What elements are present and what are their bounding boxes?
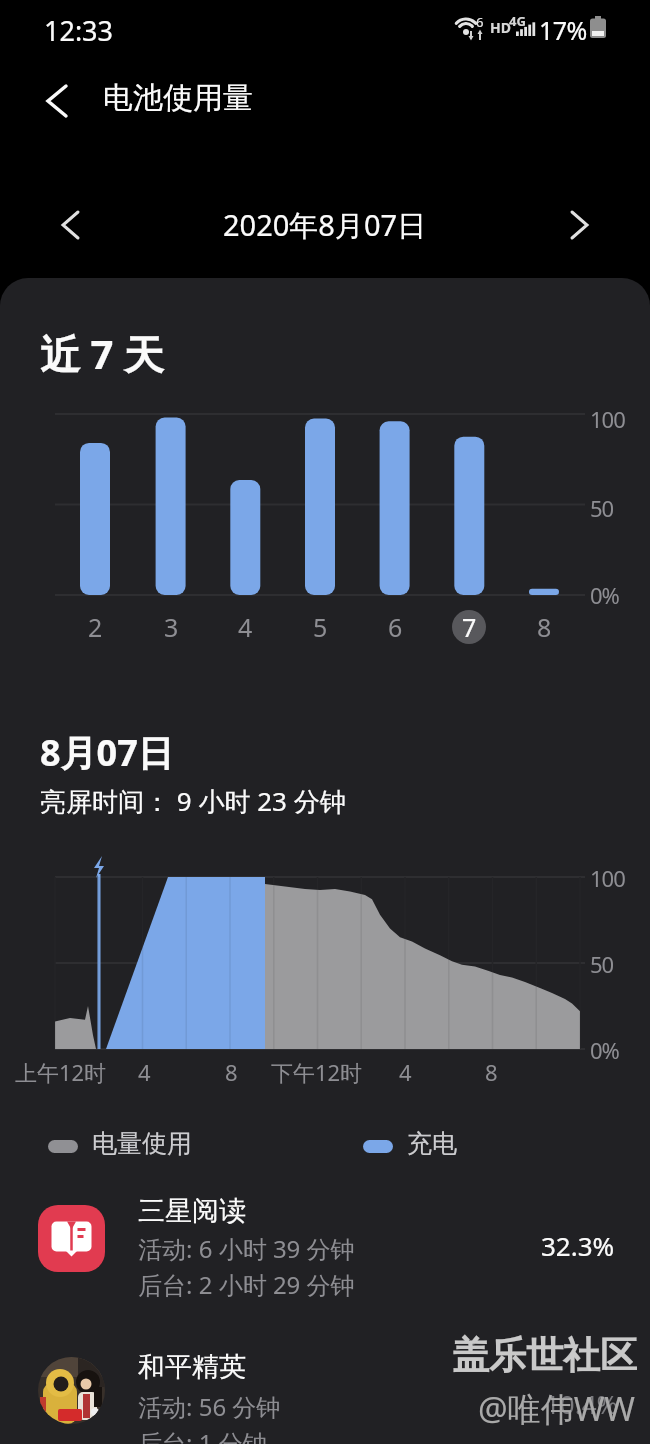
staticText: 电量使用 bbox=[92, 1128, 192, 1159]
staticText: 活动: 6 小时 39 分钟 bbox=[138, 1232, 355, 1265]
staticText: 50 bbox=[590, 493, 614, 523]
staticText: 4 bbox=[399, 1057, 412, 1087]
staticText: 下午12时 bbox=[271, 1057, 363, 1087]
button[interactable] bbox=[556, 202, 602, 248]
staticText: 8 bbox=[225, 1057, 238, 1087]
staticText: 活动: 56 分钟 bbox=[138, 1390, 281, 1423]
staticText: 100 bbox=[590, 863, 625, 893]
staticText: 亮屏时间： 9 小时 23 分钟 bbox=[40, 783, 346, 819]
staticText: 0% bbox=[590, 580, 619, 610]
staticText: 17% bbox=[539, 13, 587, 47]
staticText: 10.4% bbox=[545, 1386, 619, 1421]
staticText: 5 bbox=[313, 610, 328, 644]
staticText: 盖乐世社区 bbox=[452, 1332, 637, 1379]
staticText: 2 bbox=[88, 610, 103, 644]
staticText: 3 bbox=[164, 610, 179, 644]
staticText: 充电 bbox=[407, 1128, 457, 1159]
button[interactable] bbox=[48, 202, 94, 248]
staticText: 后台: 1 分钟 bbox=[138, 1426, 267, 1444]
staticText: 100 bbox=[590, 404, 625, 434]
staticText: 8月07日 bbox=[40, 728, 174, 777]
button[interactable]: 和平精英 bbox=[0, 1350, 650, 1444]
staticText: 电池使用量 bbox=[103, 79, 253, 117]
staticText: 上午12时 bbox=[15, 1057, 107, 1087]
staticText: 6 bbox=[476, 13, 484, 31]
button[interactable]: 三星阅读 bbox=[0, 1194, 650, 1304]
staticText: 7 bbox=[462, 610, 477, 644]
staticText: 和平精英 bbox=[138, 1350, 246, 1384]
staticText: 50 bbox=[590, 949, 614, 979]
button[interactable]: 8 bbox=[527, 610, 561, 644]
button[interactable] bbox=[36, 78, 80, 122]
button[interactable]: 6 bbox=[378, 610, 412, 644]
button[interactable]: 4 bbox=[228, 610, 262, 644]
button[interactable]: 3 bbox=[154, 610, 188, 644]
staticText: 4 bbox=[138, 1057, 151, 1087]
staticText: 8 bbox=[485, 1057, 498, 1087]
staticText: 0% bbox=[590, 1035, 619, 1065]
staticText: 4G bbox=[509, 12, 526, 30]
staticText: HD bbox=[490, 18, 511, 37]
staticText: 6 bbox=[388, 610, 403, 644]
button[interactable]: 2 bbox=[78, 610, 112, 644]
button[interactable]: 7 bbox=[452, 610, 486, 644]
staticText: 近 7 天 bbox=[40, 326, 164, 381]
staticText: 三星阅读 bbox=[138, 1194, 246, 1228]
staticText: 后台: 2 小时 29 分钟 bbox=[138, 1268, 355, 1301]
staticText: @唯伟WW bbox=[478, 1386, 636, 1431]
staticText: 8 bbox=[537, 610, 552, 644]
staticText: 2020年8月07日 bbox=[223, 205, 427, 245]
staticText: 32.3% bbox=[541, 1228, 615, 1263]
button[interactable]: 5 bbox=[303, 610, 337, 644]
staticText: 4 bbox=[238, 610, 253, 644]
staticText: 12:33 bbox=[44, 12, 114, 49]
